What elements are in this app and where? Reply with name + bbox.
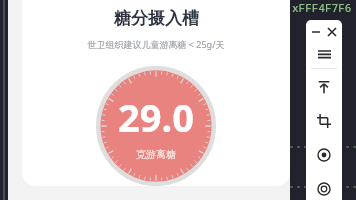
- staticText: 29.0: [118, 91, 194, 143]
- staticText: xFFF4F7F6: [292, 0, 352, 15]
- button[interactable]: Scroll to top: [306, 75, 342, 99]
- button[interactable]: Close: [325, 25, 339, 39]
- button[interactable]: Minimize: [309, 25, 323, 39]
- staticText: 世卫组织建议儿童游离糖 < 25g/天: [87, 38, 225, 50]
- staticText: 克游离糖: [136, 148, 176, 161]
- button[interactable]: Menu: [306, 45, 342, 65]
- button[interactable]: Record: [306, 143, 342, 167]
- button[interactable]: 29.0: [66, 66, 246, 186]
- button[interactable]: Screenshot: [306, 177, 342, 200]
- button[interactable]: Crop: [306, 109, 342, 133]
- staticText: 糖分摄入槽: [114, 8, 199, 29]
